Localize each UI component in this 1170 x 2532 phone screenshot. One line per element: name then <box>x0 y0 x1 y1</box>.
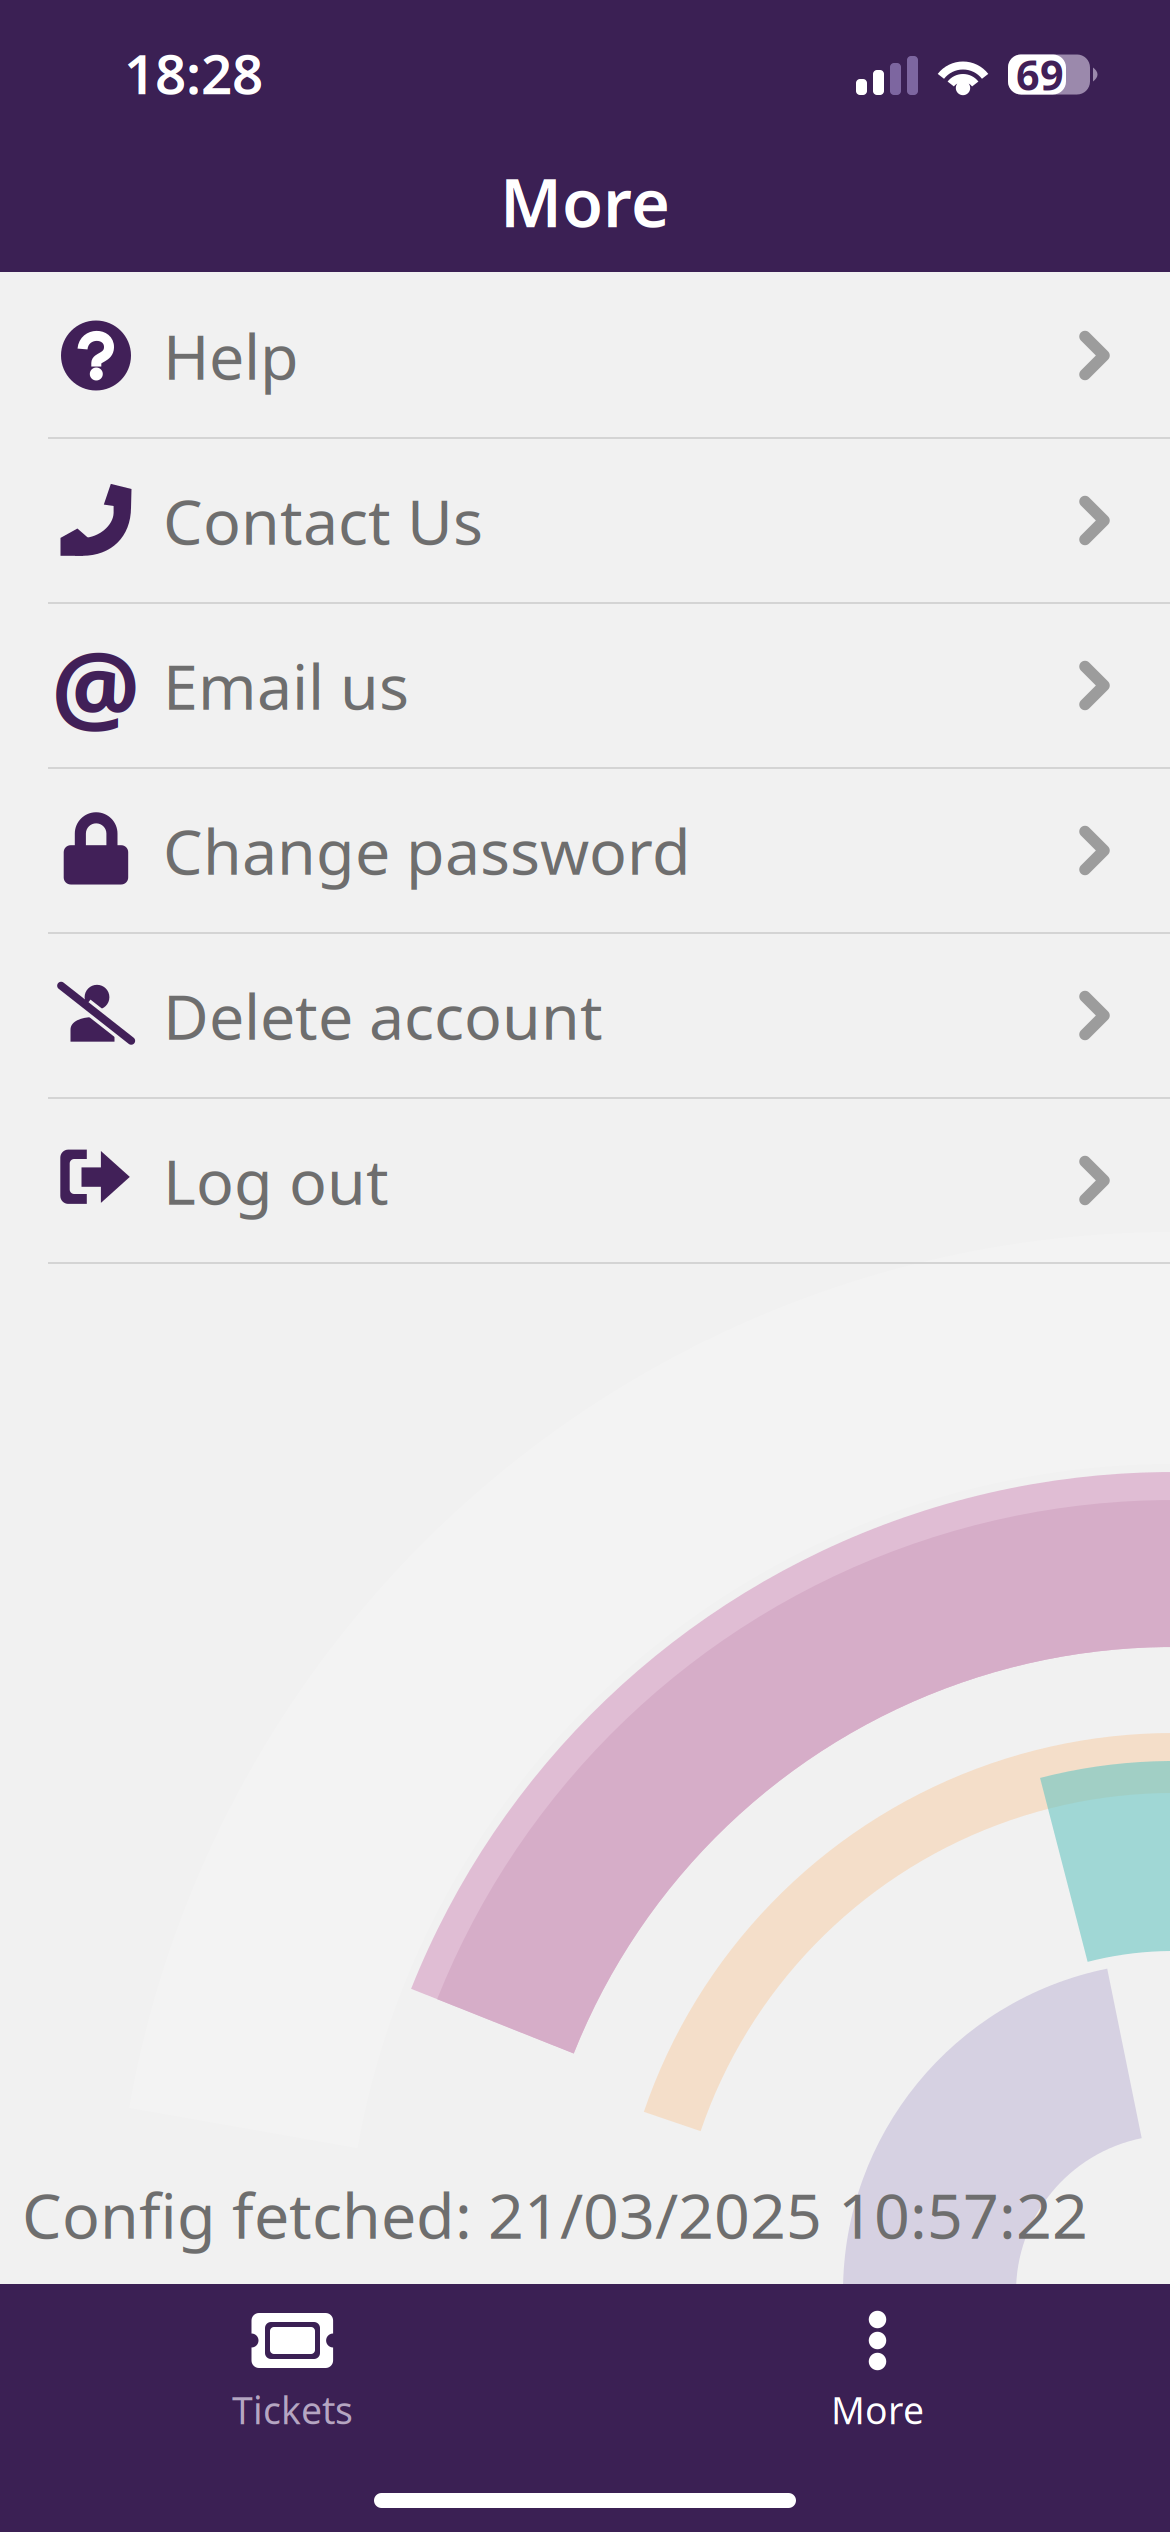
staticText: Help <box>163 314 299 397</box>
staticText: Log out <box>163 1139 389 1222</box>
button[interactable]: Delete account <box>0 934 1170 1099</box>
staticText: Delete account <box>163 974 603 1057</box>
button[interactable]: Contact Us <box>0 439 1170 604</box>
button[interactable]: More <box>585 2313 1170 2435</box>
staticText: @ <box>51 620 140 751</box>
staticText: Email us <box>163 644 409 727</box>
staticText: Change password <box>163 809 691 892</box>
button[interactable]: Log out <box>0 1099 1170 1264</box>
button[interactable]: @ <box>0 604 1170 769</box>
staticText: 18:28 <box>124 37 263 109</box>
button[interactable]: Tickets <box>0 2313 585 2435</box>
staticText: More <box>500 157 670 245</box>
staticText: Config fetched: 21/03/2025 10:57:22 <box>22 2173 1088 2256</box>
staticText: Tickets <box>232 2385 353 2435</box>
staticText: 69 <box>1016 47 1064 102</box>
button[interactable]: Change password <box>0 769 1170 934</box>
staticText: More <box>831 2385 924 2435</box>
button[interactable]: Help <box>0 274 1170 439</box>
staticText: Contact Us <box>163 479 483 562</box>
